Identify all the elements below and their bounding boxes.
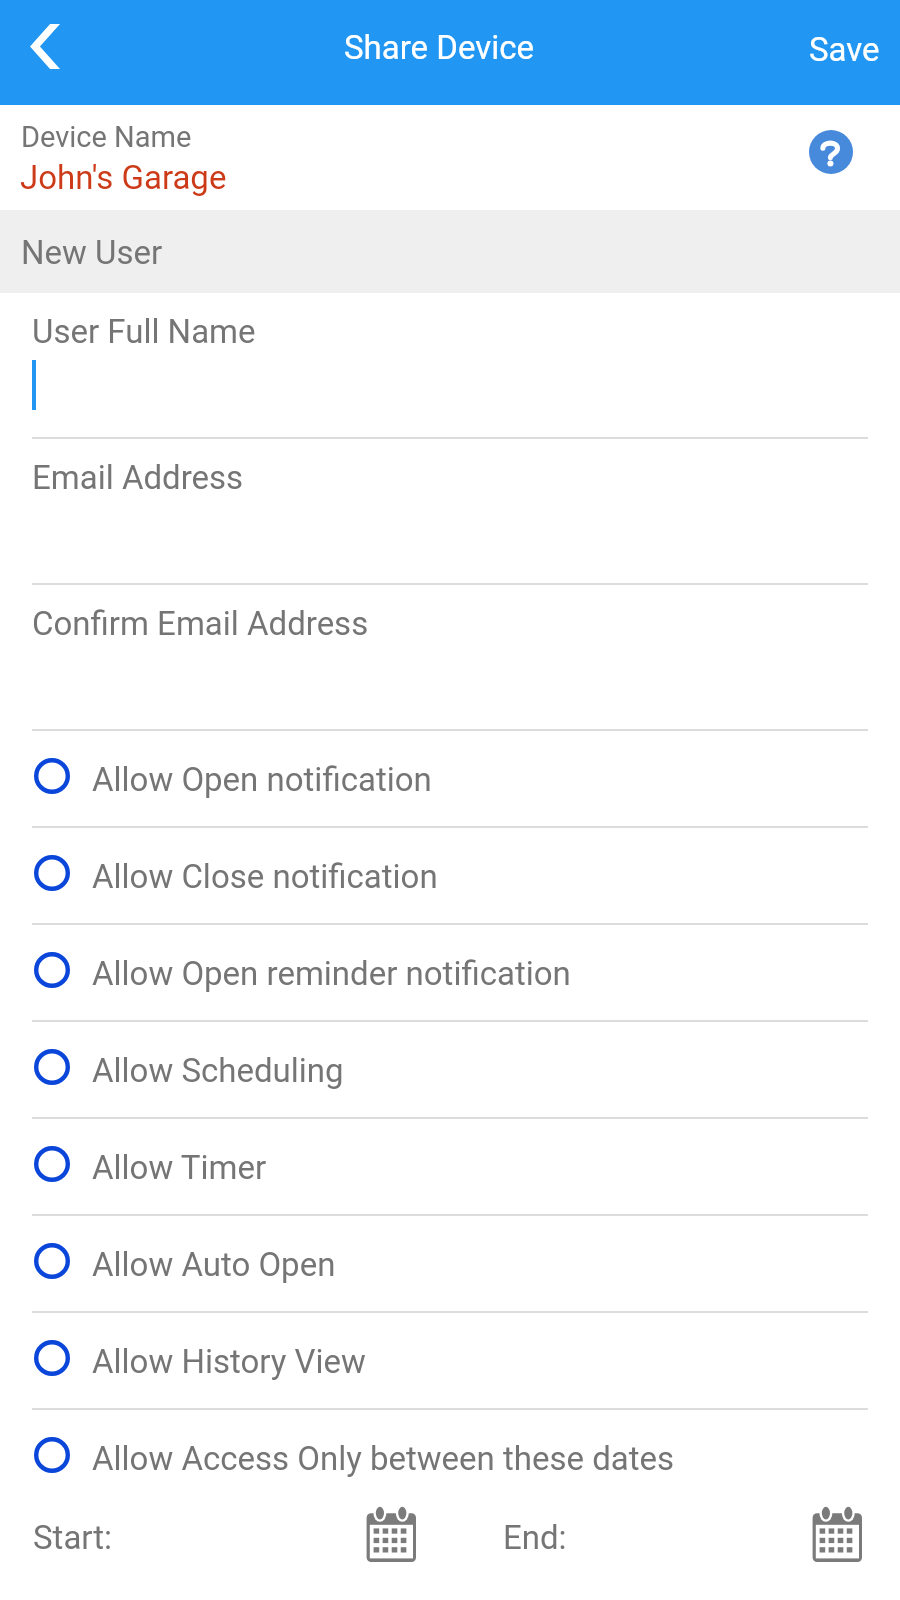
staticText: Allow Access Only between these dates xyxy=(92,1439,675,1478)
staticText: Share Device xyxy=(344,28,535,67)
staticText: Allow Timer xyxy=(92,1148,267,1187)
button[interactable]: Allow Close notification xyxy=(0,828,900,923)
button[interactable]: Allow Open notification xyxy=(0,731,900,826)
button[interactable]: Allow Auto Open xyxy=(0,1216,900,1311)
button[interactable]: Help xyxy=(809,130,853,174)
button[interactable]: Allow Scheduling xyxy=(0,1022,900,1117)
staticText: John's Garage xyxy=(20,158,227,197)
staticText: Allow Close notification xyxy=(92,857,438,896)
button[interactable]: Allow Open reminder notification xyxy=(0,925,900,1020)
staticText: New User xyxy=(21,233,163,272)
staticText: Save xyxy=(809,30,880,69)
button[interactable]: User Full Name xyxy=(0,293,900,439)
staticText: Device Name xyxy=(21,120,192,154)
button[interactable]: Email Address xyxy=(0,439,900,585)
button[interactable]: Allow Access Only between these dates xyxy=(0,1410,900,1505)
staticText: Allow Scheduling xyxy=(92,1051,344,1090)
button[interactable]: Pick start date xyxy=(366,1506,422,1562)
staticText: Allow Auto Open xyxy=(92,1245,336,1284)
staticText: User Full Name xyxy=(32,312,256,351)
staticText: Allow Open notification xyxy=(92,760,432,799)
staticText: End: xyxy=(503,1518,567,1557)
button[interactable]: Pick end date xyxy=(812,1506,868,1562)
staticText: Email Address xyxy=(32,458,244,497)
button[interactable]: Allow History View xyxy=(0,1313,900,1408)
staticText: Confirm Email Address xyxy=(32,604,369,643)
button[interactable]: Save xyxy=(779,0,900,105)
button[interactable]: Confirm Email Address xyxy=(0,585,900,731)
button[interactable]: Back xyxy=(0,0,89,105)
staticText: Allow History View xyxy=(92,1342,366,1381)
staticText: Start: xyxy=(33,1518,113,1557)
staticText: Allow Open reminder notification xyxy=(92,954,571,993)
button[interactable]: Allow Timer xyxy=(0,1119,900,1214)
